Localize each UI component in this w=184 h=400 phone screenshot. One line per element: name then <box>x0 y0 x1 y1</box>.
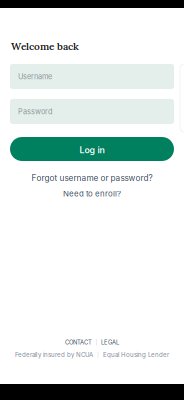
button[interactable]: Forgot username or password? <box>0 172 184 183</box>
button[interactable]: Log in <box>10 137 174 161</box>
button[interactable]: LEGAL <box>101 339 119 346</box>
staticText: Username <box>18 72 52 81</box>
button[interactable]: Need to enroll? <box>0 188 184 199</box>
button[interactable]: Username <box>10 64 174 89</box>
staticText: Log in <box>79 145 104 155</box>
staticText: Need to enroll? <box>63 189 121 198</box>
staticText: Equal Housing Lender <box>103 351 169 358</box>
staticText: Password <box>18 107 52 116</box>
staticText: Welcome back <box>11 40 79 53</box>
staticText: Forgot username or password? <box>31 173 152 183</box>
button[interactable]: Password <box>10 99 174 124</box>
staticText: CONTACT <box>65 339 92 346</box>
staticText: Federally insured by NCUA <box>15 351 93 358</box>
button[interactable]: CONTACT <box>65 339 92 346</box>
staticText: LEGAL <box>101 339 119 346</box>
